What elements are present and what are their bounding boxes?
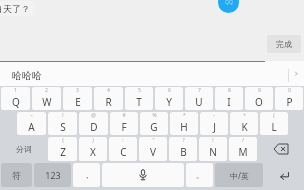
- staticText: 4: [107, 87, 110, 94]
- staticText: 分词: [16, 144, 32, 154]
- staticText: 0: [288, 87, 291, 94]
- button[interactable]: 7: [185, 87, 213, 110]
- button[interactable]: %: [140, 112, 168, 135]
- staticText: T: [136, 95, 142, 109]
- staticText: :: [122, 137, 124, 144]
- button[interactable]: Voice input: [102, 163, 184, 187]
- staticText: -: [213, 112, 215, 119]
- button[interactable]: !: [199, 137, 227, 161]
- staticText: %: [152, 112, 157, 119]
- button[interactable]: *: [170, 112, 198, 135]
- button[interactable]: Expand candidates: [289, 61, 304, 86]
- button[interactable]: 分词: [1, 137, 46, 161]
- button[interactable]: 完成: [267, 35, 301, 53]
- button[interactable]: Enter: [265, 163, 303, 187]
- button[interactable]: 0: [275, 87, 303, 110]
- staticText: #: [122, 112, 126, 119]
- staticText: C: [120, 145, 127, 159]
- staticText: 哈哈哈: [12, 69, 42, 82]
- button[interactable]: 123: [34, 163, 71, 187]
- button[interactable]: ?: [169, 137, 197, 161]
- button[interactable]: Backspace: [259, 137, 303, 161]
- button[interactable]: 3: [63, 87, 92, 110]
- staticText: 123: [45, 169, 61, 181]
- staticText: L: [271, 120, 277, 134]
- staticText: V: [150, 145, 156, 159]
- button[interactable]: !: [48, 112, 77, 135]
- staticText: X: [90, 145, 96, 159]
- staticText: 然白天了？: [0, 3, 30, 14]
- staticText: O: [255, 95, 263, 109]
- staticText: Q: [12, 95, 20, 109]
- staticText: ): [92, 137, 94, 144]
- staticText: *: [183, 112, 186, 119]
- staticText: P: [286, 95, 293, 109]
- button[interactable]: 。: [186, 163, 213, 187]
- button[interactable]: 4: [94, 87, 123, 110]
- staticText: ?: [182, 137, 185, 144]
- button[interactable]: 6: [155, 87, 183, 110]
- button[interactable]: +: [230, 112, 258, 135]
- staticText: 2: [45, 87, 48, 94]
- staticText: 1: [14, 87, 17, 94]
- staticText: 3: [76, 87, 79, 94]
- button[interactable]: ": [139, 137, 167, 161]
- button[interactable]: ，: [73, 163, 100, 187]
- staticText: !: [62, 112, 64, 119]
- staticText: F: [121, 120, 127, 134]
- staticText: I: [227, 95, 231, 109]
- staticText: N: [209, 145, 217, 159]
- button[interactable]: -: [200, 112, 228, 135]
- staticText: +: [243, 112, 246, 119]
- button[interactable]: ~: [17, 112, 46, 135]
- staticText: QQ: [225, 0, 233, 6]
- button[interactable]: ): [79, 137, 107, 161]
- button[interactable]: /: [229, 137, 257, 161]
- button[interactable]: 9: [245, 87, 273, 110]
- staticText: {: [62, 137, 64, 144]
- staticText: K: [241, 120, 248, 134]
- staticText: 5: [138, 87, 141, 94]
- staticText: 9: [258, 87, 261, 94]
- button[interactable]: #: [110, 112, 138, 135]
- staticText: A: [28, 120, 35, 134]
- staticText: 。: [196, 170, 204, 180]
- staticText: M: [238, 145, 248, 159]
- staticText: Y: [166, 95, 172, 109]
- staticText: D: [90, 120, 98, 134]
- staticText: ，: [83, 170, 91, 180]
- staticText: ": [152, 137, 155, 144]
- staticText: 中/英: [230, 170, 249, 181]
- button[interactable]: 8: [215, 87, 243, 110]
- staticText: 7: [198, 87, 201, 94]
- staticText: 完成: [276, 39, 292, 49]
- staticText: W: [42, 95, 52, 109]
- staticText: R: [105, 95, 112, 109]
- button[interactable]: 中/英: [215, 163, 263, 187]
- staticText: E: [75, 95, 81, 109]
- button[interactable]: 符: [1, 163, 32, 187]
- staticText: ~: [30, 112, 33, 119]
- staticText: U: [195, 95, 203, 109]
- button[interactable]: @: [79, 112, 108, 135]
- staticText: H: [180, 120, 188, 134]
- staticText: J: [213, 120, 216, 134]
- staticText: G: [150, 120, 158, 134]
- staticText: 符: [12, 170, 21, 181]
- staticText: S: [60, 120, 66, 134]
- staticText: (: [273, 112, 275, 119]
- button[interactable]: {: [48, 137, 77, 161]
- staticText: @: [91, 112, 96, 119]
- button[interactable]: 2: [32, 87, 61, 110]
- staticText: /: [242, 137, 244, 144]
- staticText: !: [212, 137, 214, 144]
- staticText: 8: [228, 87, 231, 94]
- button[interactable]: :: [109, 137, 137, 161]
- staticText: Z: [60, 145, 66, 159]
- button[interactable]: 1: [1, 87, 30, 110]
- staticText: B: [180, 145, 187, 159]
- staticText: 6: [168, 87, 171, 94]
- button[interactable]: 5: [125, 87, 153, 110]
- button[interactable]: (: [260, 112, 288, 135]
